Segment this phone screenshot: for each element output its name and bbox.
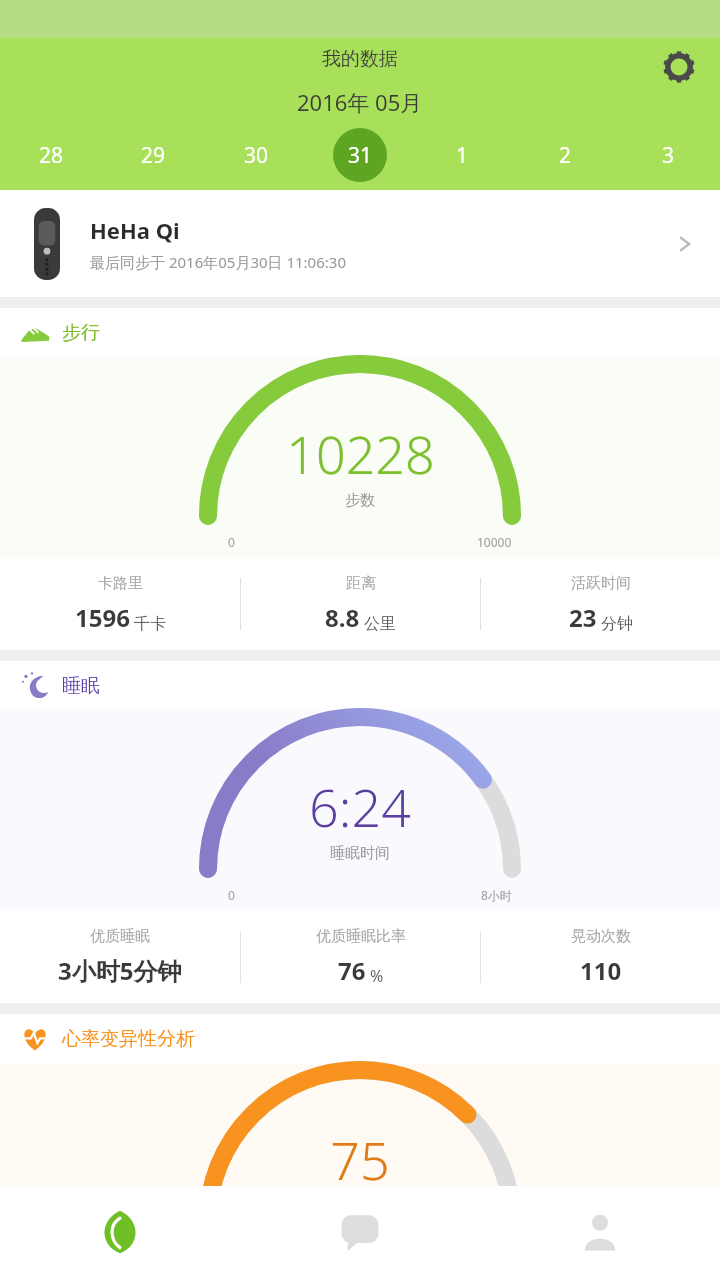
staticText: 29	[141, 141, 166, 170]
staticText: 31	[348, 141, 373, 170]
staticText: 晃动次数	[571, 927, 631, 946]
staticText: 最后同步于 2016年05月30日 11:06:30	[90, 252, 346, 272]
button[interactable]: 28	[0, 124, 102, 186]
staticText: 心率变异性分析	[62, 1027, 195, 1051]
button[interactable]: 29	[102, 124, 205, 186]
button[interactable]: 卡路里	[0, 558, 240, 650]
staticText: 10228	[286, 418, 435, 489]
staticText: 8小时	[481, 887, 512, 903]
staticText: 距离	[346, 574, 376, 593]
staticText: 3	[662, 141, 675, 170]
button[interactable]: 活跃时间	[481, 558, 720, 650]
staticText: 75	[330, 1124, 390, 1186]
button[interactable]: 距离	[241, 558, 480, 650]
staticText: 30	[244, 141, 269, 170]
staticText: 76	[338, 954, 366, 987]
staticText: 28	[39, 141, 64, 170]
staticText: 分钟	[601, 614, 633, 634]
staticText: 我的数据	[322, 47, 398, 71]
staticText: 0	[228, 887, 235, 903]
button[interactable]: 优质睡眠	[0, 911, 240, 1003]
staticText: 步行	[62, 321, 100, 345]
button[interactable]: 30	[205, 124, 308, 186]
button[interactable]: Profile	[480, 1186, 720, 1278]
staticText: 公里	[364, 614, 396, 634]
button[interactable]: 优质睡眠比率	[241, 911, 480, 1003]
staticText: 卡路里	[98, 574, 143, 593]
staticText: 优质睡眠	[90, 927, 150, 946]
button[interactable]: Messages	[240, 1186, 480, 1278]
staticText: 活跃时间	[571, 574, 631, 593]
button[interactable]: Data	[0, 1186, 240, 1278]
staticText: 0	[228, 534, 235, 550]
button[interactable]: 3	[617, 124, 720, 186]
staticText: 23	[569, 601, 597, 634]
staticText: 110	[580, 954, 622, 987]
staticText: 3小时5分钟	[58, 954, 182, 987]
staticText: 优质睡眠比率	[316, 927, 406, 946]
button[interactable]: 1	[411, 124, 514, 186]
staticText: 2016年 05月	[297, 87, 423, 117]
staticText: 步数	[345, 491, 375, 510]
staticText: 千卡	[134, 614, 166, 634]
staticText: 1596	[75, 601, 130, 634]
staticText: 1	[456, 141, 469, 170]
button[interactable]: 2	[514, 124, 617, 186]
staticText: 睡眠	[62, 674, 100, 698]
staticText: 6:24	[309, 771, 411, 842]
staticText: HeHa Qi	[90, 215, 180, 245]
button[interactable]: 31	[308, 124, 411, 186]
staticText: 10000	[477, 534, 512, 550]
staticText: 8.8	[325, 601, 360, 634]
button[interactable]: 晃动次数	[481, 911, 720, 1003]
button[interactable]: HeHa Qi	[0, 190, 720, 297]
staticText: %	[370, 965, 384, 987]
staticText: 2	[559, 141, 572, 170]
staticText: 睡眠时间	[330, 844, 390, 863]
button[interactable]: Settings	[656, 44, 702, 90]
